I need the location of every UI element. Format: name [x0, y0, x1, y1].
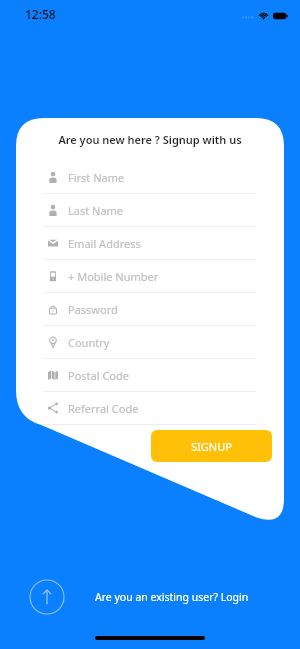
- button[interactable]: + Mobile Number: [44, 260, 256, 293]
- button[interactable]: Email Address: [44, 227, 256, 260]
- staticText: Country: [68, 335, 110, 350]
- staticText: Password: [68, 302, 118, 317]
- staticText: Email Address: [68, 236, 141, 251]
- staticText: Are you new here ? Signup with us: [28, 132, 272, 147]
- staticText: + Mobile Number: [68, 269, 159, 284]
- staticText: Postal Code: [68, 368, 129, 383]
- button[interactable]: Password: [44, 293, 256, 326]
- staticText: First Name: [68, 170, 125, 185]
- staticText: Are you an existing user? Login: [95, 590, 249, 604]
- staticText: Referral Code: [68, 401, 139, 416]
- button[interactable]: Are you an existing user? Login: [92, 588, 252, 606]
- button[interactable]: Postal Code: [44, 359, 256, 392]
- staticText: SIGNUP: [191, 439, 232, 454]
- staticText: 12:58: [25, 6, 56, 22]
- button[interactable]: Country: [44, 326, 256, 359]
- button[interactable]: Scroll up: [29, 579, 65, 615]
- button[interactable]: First Name: [44, 161, 256, 194]
- staticText: Last Name: [68, 203, 124, 218]
- button[interactable]: Referral Code: [44, 392, 256, 425]
- button[interactable]: Last Name: [44, 194, 256, 227]
- button[interactable]: SIGNUP: [151, 430, 272, 462]
